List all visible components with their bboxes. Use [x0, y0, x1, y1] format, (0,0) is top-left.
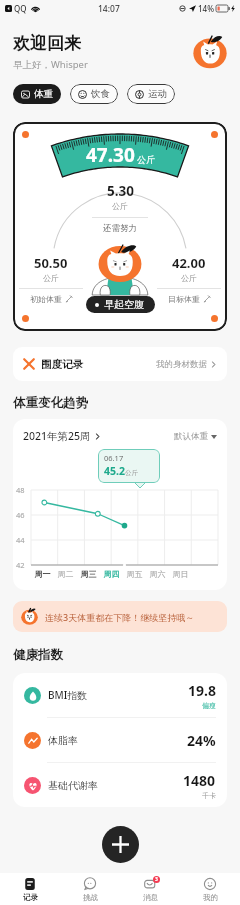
- button[interactable]: 3: [120, 873, 180, 905]
- staticText: 2021年第25周: [23, 429, 91, 443]
- staticText: 周三: [77, 569, 100, 579]
- button[interactable]: 基础代谢率: [13, 763, 227, 807]
- button[interactable]: 运动: [127, 84, 175, 104]
- staticText: 我的身材数据: [156, 359, 207, 370]
- button[interactable]: 围度记录: [13, 347, 227, 381]
- staticText: 47.30: [86, 142, 135, 168]
- staticText: 50.50: [34, 254, 68, 272]
- staticText: 周日: [169, 569, 192, 579]
- staticText: 5.30: [107, 182, 134, 200]
- staticText: 早上好，Whisper: [13, 58, 88, 71]
- staticText: 饮食: [91, 88, 110, 100]
- staticText: 周四: [100, 569, 123, 579]
- staticText: 周五: [123, 569, 146, 579]
- staticText: 默认体重: [174, 431, 208, 442]
- button[interactable]: 早起空腹: [86, 296, 155, 313]
- staticText: 欢迎回来: [13, 33, 81, 54]
- staticText: 公斤: [125, 469, 138, 477]
- staticText: 公斤: [112, 201, 128, 211]
- staticText: 围度记录: [41, 358, 83, 371]
- button[interactable]: 添加记录: [102, 826, 139, 863]
- staticText: 健康指数: [13, 647, 63, 663]
- staticText: 消息: [143, 893, 158, 902]
- staticText: 偏瘦: [202, 701, 216, 710]
- button[interactable]: 个人头像: [193, 35, 227, 69]
- staticText: 记录: [23, 893, 38, 902]
- staticText: 早起空腹: [104, 298, 144, 311]
- staticText: BMI指数: [48, 688, 88, 702]
- staticText: 连续3天体重都在下降！继续坚持哦～: [45, 611, 195, 623]
- staticText: 44: [16, 535, 25, 545]
- staticText: 19.8: [188, 681, 216, 700]
- staticText: 周六: [146, 569, 169, 579]
- button[interactable]: 挑战: [60, 873, 120, 905]
- staticText: 基础代谢率: [48, 779, 98, 792]
- staticText: 14:07: [98, 3, 120, 15]
- staticText: 48: [16, 485, 25, 495]
- staticText: 06.17: [104, 453, 124, 463]
- staticText: 千卡: [202, 791, 216, 800]
- staticText: 挑战: [83, 893, 98, 902]
- staticText: 还需努力: [103, 223, 137, 234]
- button[interactable]: BMI指数: [13, 673, 227, 717]
- button[interactable]: 我的: [180, 873, 240, 905]
- button[interactable]: 47.30: [13, 122, 227, 331]
- staticText: 体重: [34, 88, 53, 100]
- button[interactable]: 默认体重: [174, 431, 217, 442]
- staticText: 公斤: [137, 154, 155, 165]
- staticText: 运动: [148, 88, 167, 100]
- staticText: 1480: [183, 771, 216, 790]
- staticText: 公斤: [181, 273, 197, 283]
- staticText: 14%: [198, 3, 214, 14]
- staticText: 3: [155, 876, 158, 883]
- staticText: 24%: [187, 731, 216, 750]
- button[interactable]: 2021年第25周: [23, 429, 101, 443]
- staticText: 初始体重: [30, 294, 62, 304]
- staticText: 46: [16, 510, 25, 520]
- staticText: 周二: [54, 569, 77, 579]
- staticText: 45.2: [104, 464, 125, 478]
- staticText: 周一: [31, 569, 54, 579]
- button[interactable]: 体重: [13, 84, 61, 104]
- staticText: 我的: [203, 893, 218, 902]
- staticText: QQ: [14, 3, 27, 14]
- staticText: 公斤: [43, 273, 59, 283]
- staticText: 42.00: [172, 254, 206, 272]
- button[interactable]: 记录: [0, 873, 60, 905]
- button[interactable]: 体脂率: [13, 718, 227, 762]
- staticText: 体脂率: [48, 734, 78, 747]
- button[interactable]: 连续3天体重都在下降！继续坚持哦～: [13, 601, 227, 632]
- staticText: 42: [16, 560, 25, 570]
- staticText: 体重变化趋势: [13, 395, 88, 411]
- staticText: 目标体重: [168, 294, 200, 304]
- button[interactable]: 饮食: [70, 84, 118, 104]
